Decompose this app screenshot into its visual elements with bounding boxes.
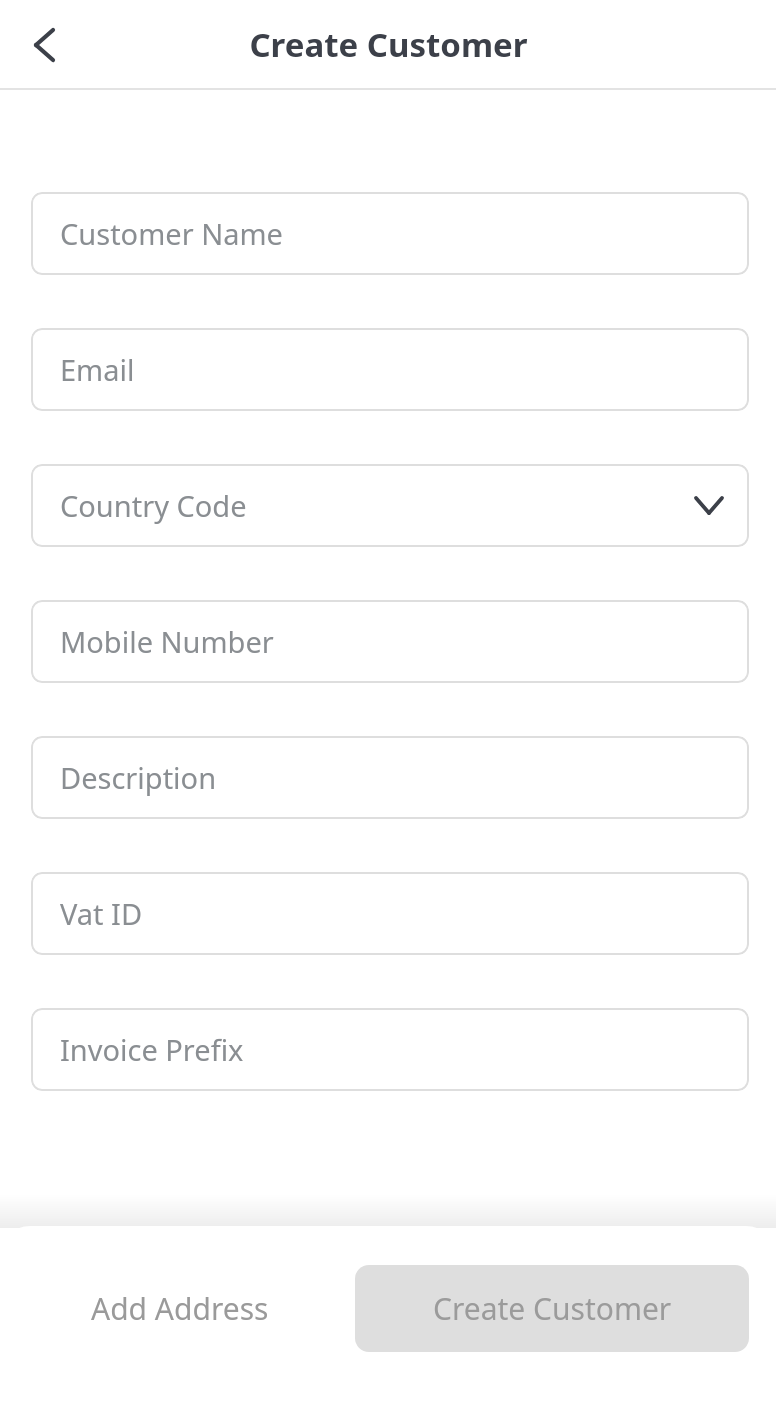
staticText: Country Code: [60, 486, 247, 525]
button[interactable]: Email: [31, 328, 749, 411]
button[interactable]: Invoice Prefix: [31, 1008, 749, 1091]
staticText: Add Address: [91, 1288, 269, 1329]
staticText: Email: [60, 350, 135, 389]
staticText: Description: [60, 758, 217, 797]
button[interactable]: Mobile Number: [31, 600, 749, 683]
staticText: Create Customer: [249, 22, 528, 67]
button[interactable]: Back: [14, 15, 74, 75]
staticText: Customer Name: [60, 214, 283, 253]
button[interactable]: Vat ID: [31, 872, 749, 955]
staticText: Invoice Prefix: [60, 1030, 244, 1069]
button[interactable]: Add Address: [31, 1265, 329, 1352]
button[interactable]: Create Customer: [355, 1265, 749, 1352]
staticText: Vat ID: [60, 894, 143, 933]
button[interactable]: Country Code: [31, 464, 749, 547]
button[interactable]: Description: [31, 736, 749, 819]
button[interactable]: Customer Name: [31, 192, 749, 275]
staticText: Mobile Number: [60, 622, 274, 661]
staticText: Create Customer: [433, 1288, 672, 1329]
